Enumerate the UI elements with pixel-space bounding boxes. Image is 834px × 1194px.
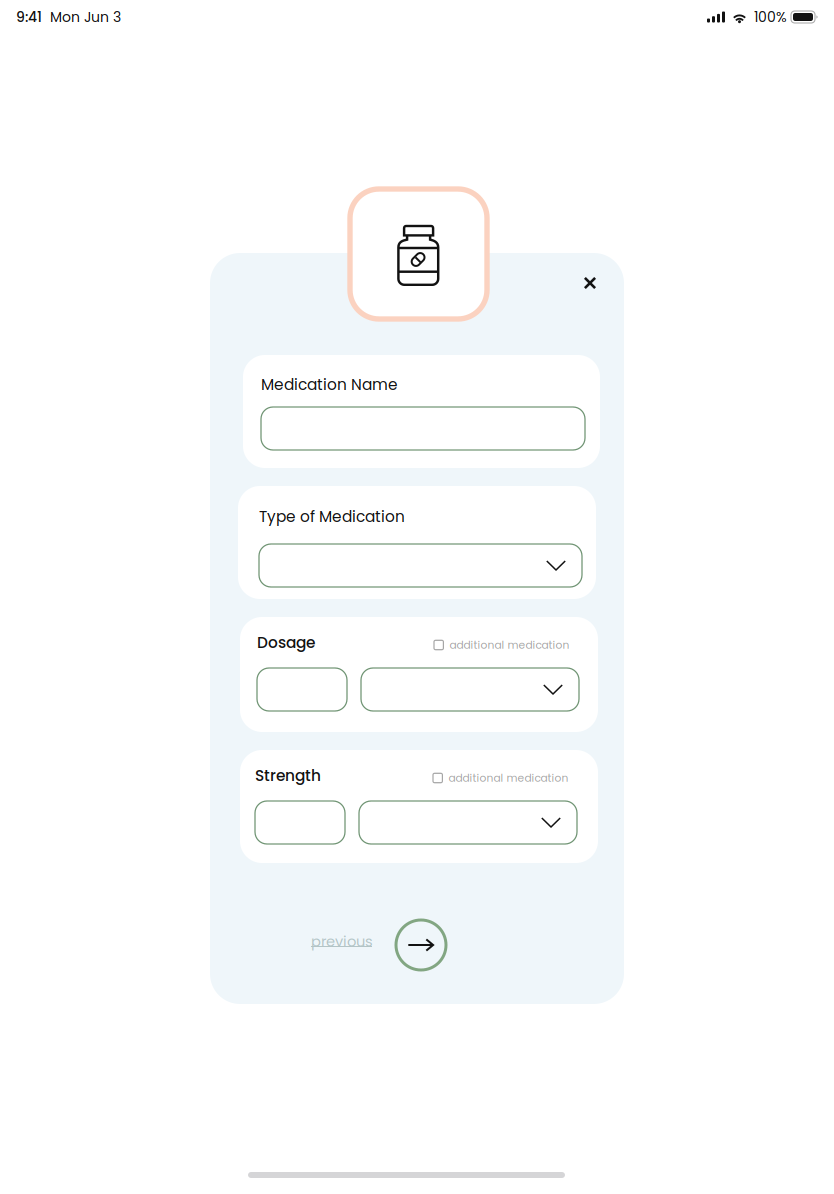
staticText: additional medication — [448, 770, 568, 785]
button[interactable]: Medication name — [261, 407, 585, 450]
button[interactable]: Type of medication — [259, 544, 582, 587]
button[interactable]: Dosage amount — [257, 668, 347, 711]
button[interactable]: additional medication — [434, 637, 589, 653]
staticText: Medication Name — [261, 374, 398, 395]
staticText: 9:41 — [16, 7, 42, 27]
button[interactable]: additional medication — [433, 770, 588, 786]
staticText: Strength — [255, 765, 321, 786]
button[interactable]: Dosage unit — [361, 668, 579, 711]
staticText: previous — [311, 931, 373, 951]
button[interactable]: Strength unit — [359, 801, 577, 844]
button[interactable]: Strength amount — [255, 801, 345, 844]
staticText: additional medication — [449, 637, 569, 652]
staticText: 100% — [754, 7, 787, 27]
staticText: Type of Medication — [259, 506, 405, 527]
button[interactable]: Close — [568, 261, 612, 305]
button[interactable]: previous — [311, 931, 383, 961]
staticText: Dosage — [257, 632, 315, 653]
button[interactable]: Next — [395, 919, 447, 971]
staticText: Mon Jun 3 — [42, 7, 121, 27]
